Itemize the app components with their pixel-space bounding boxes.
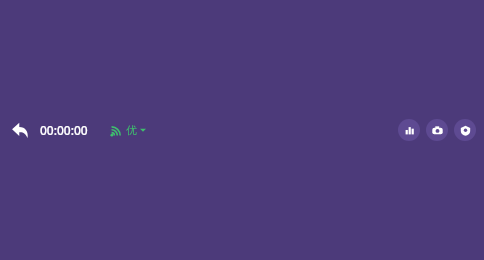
button[interactable]: Statistics (398, 119, 420, 141)
staticText: 00:00:00 (40, 122, 88, 138)
staticText: 优 (126, 123, 137, 137)
button[interactable]: Security (454, 119, 476, 141)
button[interactable]: 学生)加入教室) (0, 130, 86, 260)
button[interactable]: Back (0, 116, 40, 144)
button[interactable]: 优 (110, 116, 146, 144)
button[interactable] (74, 70, 415, 260)
button[interactable]: Camera (426, 119, 448, 141)
